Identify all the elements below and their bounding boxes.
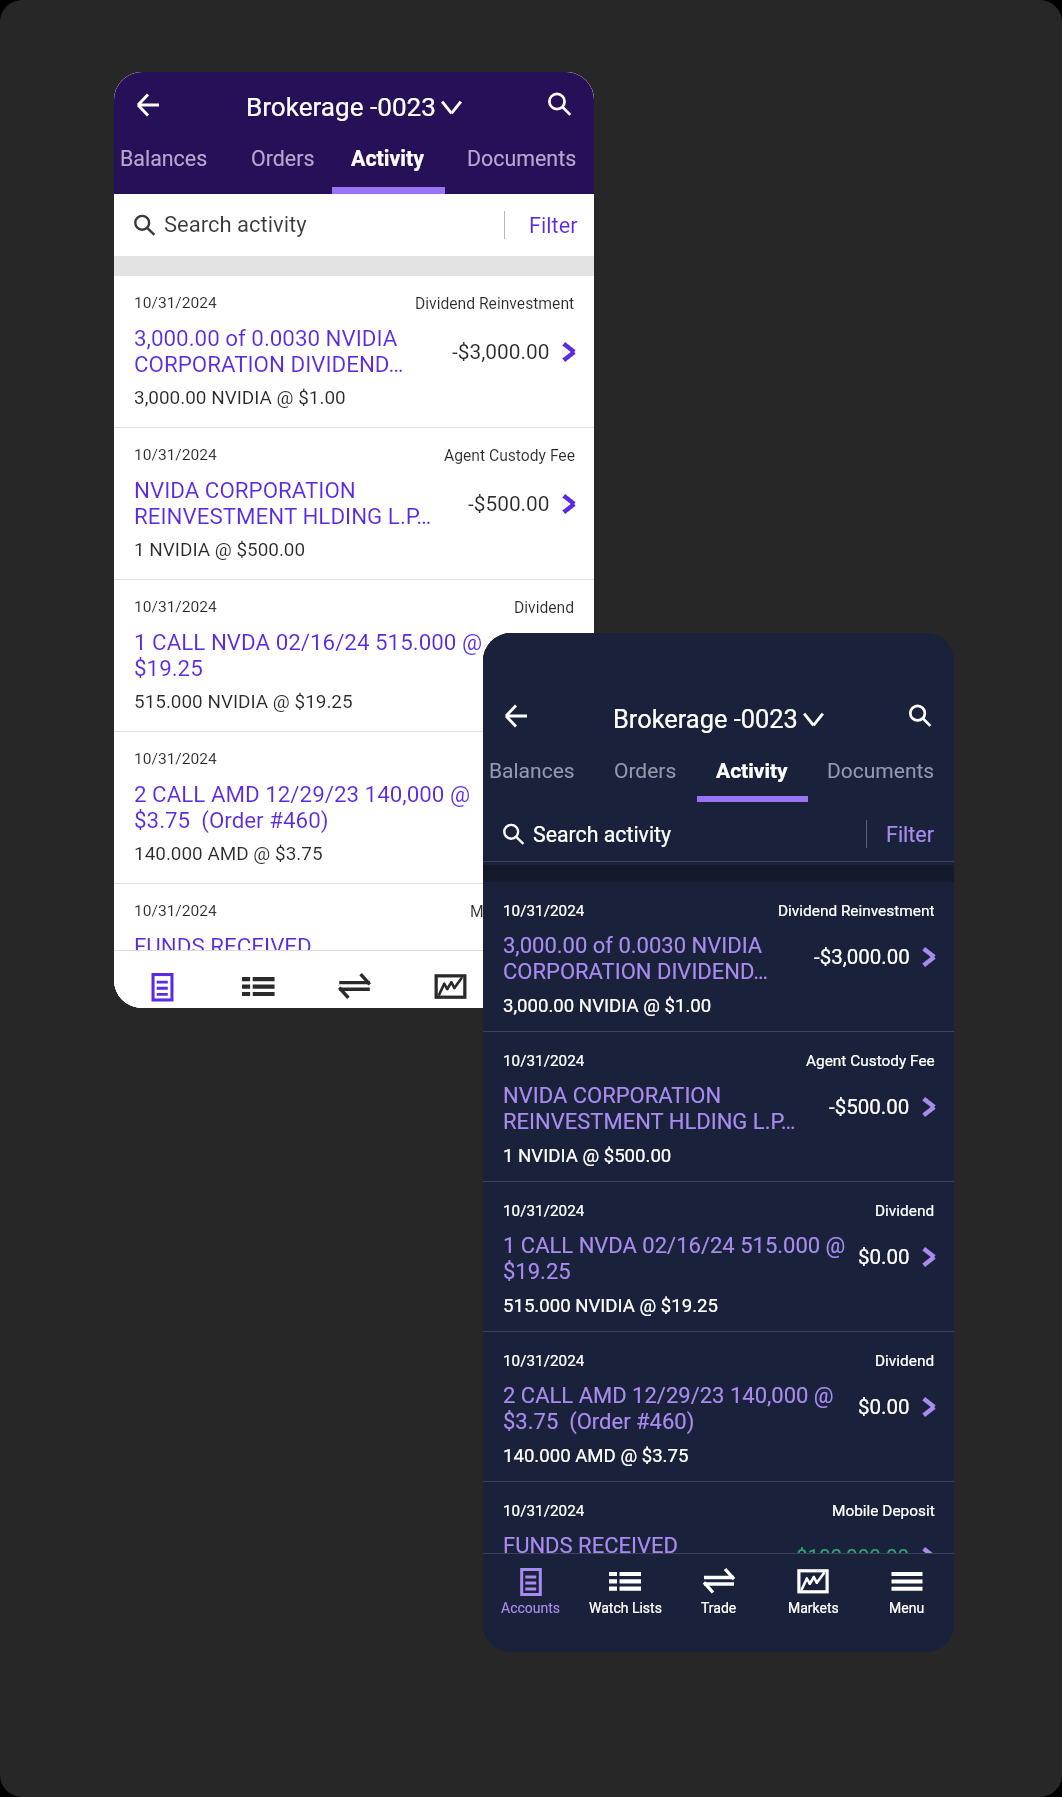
staticText: Filter [886,822,935,847]
staticText: Orders [251,146,315,171]
staticText: 10/31/2024 [134,446,217,464]
staticText: Agent Custody Fee [806,1052,935,1070]
staticText: Trade [701,1600,737,1616]
button[interactable]: 10/31/2024 [114,580,594,732]
staticText: $0.00 [858,1395,910,1419]
staticText: Agent Custody Fee [444,446,575,464]
button[interactable]: Markets [766,1553,860,1652]
staticText: REINVESTMENT HLDING L.P… [503,1109,796,1135]
staticText: 10/31/2024 [134,902,217,920]
staticText: NVIDA CORPORATION [503,1083,722,1109]
other: Back [137,94,159,116]
staticText: Dividend [875,1352,935,1370]
staticText: Balances [489,759,575,784]
staticText: Balances [120,146,208,171]
staticText: Activity [351,146,424,171]
staticText: 515.000 NVIDIA @ $19.25 [134,690,353,712]
button[interactable]: 10/31/2024 [483,1332,954,1482]
staticText: 10/31/2024 [134,294,217,312]
button[interactable] [897,693,943,739]
button[interactable] [443,146,591,187]
staticText: FUNDS RECEIVED [134,933,312,959]
button[interactable]: Search activity [114,194,594,256]
staticText: 515.000 NVIDIA @ $19.25 [503,1295,718,1317]
staticText: 140.000 AMD @ $3.75 [503,1445,689,1467]
staticText: Dividend Reinvestment [415,294,575,312]
button[interactable]: 10/31/2024 [114,732,594,884]
staticText: 2 CALL AMD 12/29/23 140,000 @ [503,1383,834,1409]
button[interactable]: Filter [519,194,588,256]
staticText: NVIDA CORPORATION [134,477,356,503]
staticText: $100,000.00 [796,1545,910,1569]
button[interactable] [805,759,951,796]
staticText: Dividend [514,598,575,616]
staticText: $3.75 (Order #460) [503,1409,695,1435]
staticText: Dividend [875,1202,935,1220]
button[interactable] [536,81,583,128]
staticText: 1 NVIDIA @ $500.00 [134,538,306,560]
button[interactable]: 10/31/2024 [114,884,594,1008]
staticText: 1 CALL NVDA 02/16/24 515.000 @ [503,1233,846,1259]
staticText: Brokerage -0023 [246,92,436,123]
staticText: FUNDS RECEIVED [503,1533,678,1559]
button[interactable] [483,759,594,796]
button[interactable]: Watch Lists [578,1553,672,1652]
button[interactable]: Menu [860,1553,954,1652]
button[interactable]: Trade [672,1553,766,1652]
staticText: $100,000.00 [434,948,550,972]
staticText: Documents [827,759,935,784]
button[interactable]: 10/31/2024 [483,1032,954,1182]
staticText: $0.00 [858,1245,910,1269]
button[interactable]: Markets [402,965,498,1008]
button[interactable]: 10/31/2024 [483,1482,954,1632]
staticText: Activity [716,759,788,784]
staticText: 10/31/2024 [503,1052,585,1070]
button[interactable]: Menu [498,965,594,1008]
staticText: 3,000.00 NVIDIA @ $1.00 [503,995,712,1017]
button[interactable]: Back [493,693,539,739]
staticText: Mobile Deposit [470,902,575,920]
button[interactable]: 10/31/2024 [483,882,954,1032]
staticText: -$3,000.00 [814,945,910,969]
staticText: -$3,000.00 [452,340,550,364]
button[interactable]: Trade [306,965,402,1008]
button[interactable] [330,146,443,187]
staticText: 10/31/2024 [134,598,217,616]
staticText: Search activity [164,212,307,238]
staticText: $3.75 (Order #460) [134,807,329,833]
button[interactable]: Back [124,81,171,128]
staticText: 3,000.00 NVIDIA @ $1.00 [134,386,346,408]
button[interactable]: Filter [877,808,944,860]
staticText: 1 CALL NVDA 02/16/24 515.000 @ [134,629,482,655]
button[interactable] [695,759,805,796]
staticText: Dividend Reinvestment [778,902,935,920]
staticText: 3,000.00 of 0.0030 NVIDIA [134,325,398,351]
staticText: Filter [529,213,578,238]
staticText: Brokerage -0023 [613,704,798,734]
staticText: 1 NVIDIA @ $500.00 [503,1145,672,1167]
button[interactable]: 10/31/2024 [114,428,594,580]
button[interactable]: Accounts [114,965,210,1008]
staticText: 10/31/2024 [503,1352,585,1370]
staticText: Accounts [501,1600,561,1616]
button[interactable] [227,146,330,187]
button[interactable]: 10/31/2024 [114,276,594,428]
button[interactable] [114,146,227,187]
other: Back [505,705,527,727]
staticText: -$500.00 [468,492,550,516]
staticText: 10/31/2024 [134,750,217,768]
button[interactable] [594,759,695,796]
staticText: Orders [614,759,677,784]
staticText: Watch Lists [589,1600,662,1616]
button[interactable]: 10/31/2024 [483,1182,954,1332]
staticText: -$500.00 [829,1095,910,1119]
button[interactable]: Watch Lists [210,965,306,1008]
staticText: CORPORATION DIVIDEND… [503,959,769,985]
staticText: CORPORATION DIVIDEND… [134,351,404,377]
staticText: 3,000.00 of 0.0030 NVIDIA [503,933,763,959]
button[interactable]: Search activity [483,808,954,860]
staticText: 2 CALL AMD 12/29/23 140,000 @ [134,781,471,807]
button[interactable]: Accounts [483,1553,578,1652]
staticText: Markets [788,1600,839,1616]
staticText: $19.25 [134,655,203,681]
